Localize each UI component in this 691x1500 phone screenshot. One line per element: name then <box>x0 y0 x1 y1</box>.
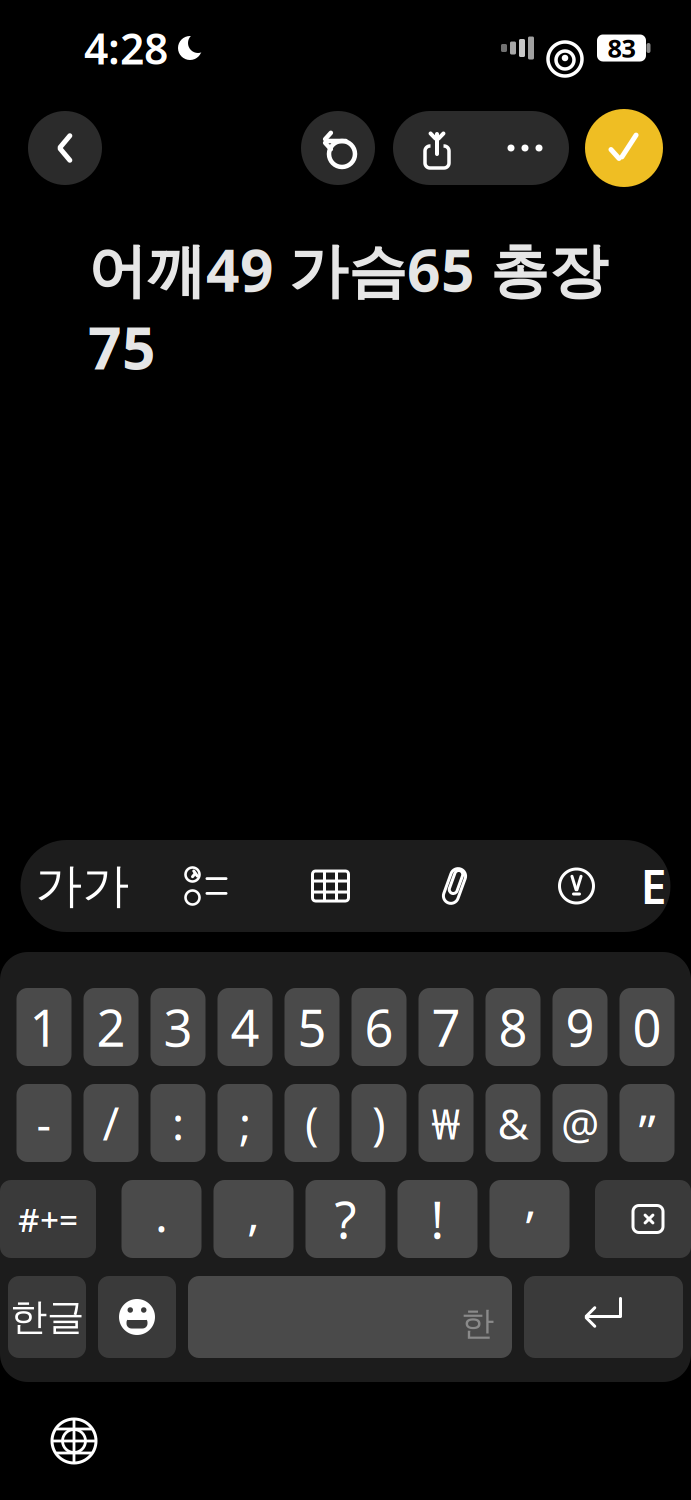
button[interactable]: Done <box>585 109 663 187</box>
button[interactable]: ! <box>397 1180 477 1258</box>
staticText: 9 <box>565 993 594 1061</box>
button[interactable]: . <box>121 1180 201 1258</box>
button[interactable]: Undo <box>301 111 375 185</box>
button[interactable]: 6 <box>351 988 406 1066</box>
staticText: ’ <box>525 1195 533 1259</box>
staticText: 83 <box>607 31 635 65</box>
button[interactable]: 9 <box>552 988 607 1066</box>
staticText: 4 <box>230 993 259 1061</box>
button[interactable]: Table <box>268 840 392 932</box>
staticText: . <box>155 1182 168 1246</box>
staticText: 가가 <box>35 857 129 915</box>
button[interactable]: : <box>150 1084 205 1162</box>
button[interactable]: ₩ <box>418 1084 473 1162</box>
staticText: & <box>497 1095 528 1151</box>
staticText: 1 <box>29 993 58 1061</box>
button[interactable]: 한글 <box>8 1276 86 1358</box>
button[interactable]: 3 <box>150 988 205 1066</box>
staticText: 7 <box>431 993 460 1061</box>
button[interactable]: & <box>485 1084 540 1162</box>
staticText: 어깨49 가슴65 총장75 <box>88 230 608 386</box>
button[interactable]: ? <box>305 1180 385 1258</box>
staticText: 4:28 <box>84 20 168 76</box>
button[interactable]: 5 <box>284 988 339 1066</box>
button[interactable]: , <box>213 1180 293 1258</box>
staticText: 한글 <box>10 1294 84 1340</box>
button[interactable]: 0 <box>619 988 674 1066</box>
staticText: 한 <box>461 1303 494 1344</box>
button[interactable]: 가가 <box>20 840 144 932</box>
button[interactable]: Back <box>28 111 102 185</box>
staticText: 8 <box>498 993 527 1061</box>
button[interactable]: 2 <box>83 988 138 1066</box>
button[interactable]: 4 <box>217 988 272 1066</box>
button[interactable]: More formatting <box>636 840 670 932</box>
staticText: ( <box>305 1093 319 1153</box>
button[interactable]: ; <box>217 1084 272 1162</box>
button[interactable]: Markup <box>516 840 636 932</box>
button[interactable]: More options <box>481 111 569 185</box>
button[interactable]: Attach file <box>392 840 516 932</box>
button[interactable]: @ <box>552 1084 607 1162</box>
staticText: #+= <box>18 1197 78 1241</box>
staticText: ) <box>372 1093 386 1153</box>
staticText: , <box>247 1180 260 1244</box>
staticText: ” <box>638 1099 655 1163</box>
staticText: / <box>102 1093 119 1153</box>
staticText: ₩ <box>431 1095 460 1151</box>
staticText: - <box>36 1093 51 1153</box>
button[interactable]: ’ <box>489 1180 569 1258</box>
staticText: E <box>640 855 666 917</box>
staticText: ! <box>430 1185 444 1253</box>
button[interactable]: / <box>83 1084 138 1162</box>
button[interactable]: Checklist <box>144 840 268 932</box>
button[interactable]: 8 <box>485 988 540 1066</box>
staticText: 0 <box>632 993 661 1061</box>
staticText: @ <box>561 1095 599 1151</box>
button[interactable]: Share <box>393 111 481 185</box>
button[interactable]: Emoji <box>98 1276 176 1358</box>
button[interactable]: ) <box>351 1084 406 1162</box>
button[interactable]: Delete <box>595 1180 691 1258</box>
staticText: 2 <box>96 993 125 1061</box>
staticText: 6 <box>364 993 393 1061</box>
button[interactable]: 7 <box>418 988 473 1066</box>
button[interactable]: ” <box>619 1084 674 1162</box>
button[interactable]: 1 <box>16 988 71 1066</box>
button[interactable]: ( <box>284 1084 339 1162</box>
staticText: : <box>172 1093 184 1153</box>
button[interactable]: Switch keyboard <box>30 1397 118 1485</box>
staticText: 3 <box>163 993 192 1061</box>
staticText: ? <box>334 1185 356 1253</box>
button[interactable]: Space <box>188 1276 512 1358</box>
button[interactable]: #+= <box>0 1180 96 1258</box>
staticText: 5 <box>297 993 326 1061</box>
button[interactable]: - <box>16 1084 71 1162</box>
staticText: ; <box>239 1093 251 1153</box>
button[interactable]: Return <box>524 1276 683 1358</box>
